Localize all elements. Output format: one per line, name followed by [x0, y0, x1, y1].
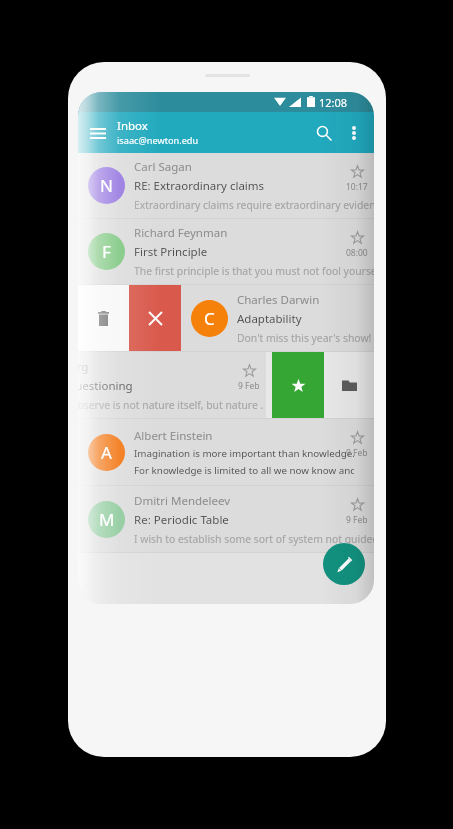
button[interactable]: F: [78, 219, 374, 285]
staticText: 10:17: [346, 181, 368, 193]
button[interactable]: Menu: [85, 118, 111, 148]
button[interactable]: Star: [272, 352, 324, 418]
button[interactable]: A: [78, 419, 374, 486]
staticText: What we observe is not nature itself, bu…: [78, 398, 264, 412]
staticText: Dmitri Mendeleev: [134, 493, 231, 509]
staticText: Charles Darwin: [237, 292, 320, 308]
staticText: Inbox: [117, 118, 148, 134]
staticText: 08:00: [346, 247, 368, 259]
button[interactable]: More options: [341, 118, 367, 148]
staticText: 9 Feb: [346, 447, 368, 459]
button[interactable]: W: [78, 352, 266, 418]
staticText: Albert Einstein: [134, 428, 213, 444]
staticText: Don't miss this year's show! Ar: [237, 331, 374, 345]
staticText: RE: Extraordinary claims: [134, 178, 265, 194]
staticText: The first principle is that you must not…: [134, 264, 374, 278]
staticText: First Principle: [134, 244, 208, 260]
staticText: N: [100, 174, 113, 197]
staticText: 12:08: [319, 95, 348, 110]
staticText: M: [99, 508, 115, 531]
staticText: Carl Sagan: [134, 159, 192, 175]
button[interactable]: Delete: [129, 285, 181, 351]
staticText: 9 Feb: [238, 380, 260, 392]
staticText: thod of questioning: [78, 378, 133, 394]
staticText: Richard Feynman: [134, 225, 228, 241]
button[interactable]: Compose: [323, 543, 365, 585]
staticText: Heisenberg: [78, 359, 89, 375]
staticText: isaac@newton.edu: [117, 134, 199, 147]
staticText: C: [204, 307, 215, 330]
staticText: 9 Feb: [346, 514, 368, 526]
staticText: A: [101, 441, 112, 464]
staticText: Imagination is more important than knowl…: [134, 447, 354, 477]
staticText: I wish to establish some sort of system …: [134, 532, 374, 546]
staticText: F: [102, 240, 111, 263]
button[interactable]: Move to folder: [324, 352, 374, 418]
staticText: Extraordinary claims require extraordina…: [134, 198, 374, 212]
staticText: Re: Periodic Table: [134, 512, 229, 528]
button[interactable]: N: [78, 153, 374, 219]
button[interactable]: C: [181, 285, 374, 351]
staticText: Adaptability: [237, 311, 302, 327]
button[interactable]: Search: [309, 118, 339, 148]
button[interactable]: M: [78, 486, 374, 553]
